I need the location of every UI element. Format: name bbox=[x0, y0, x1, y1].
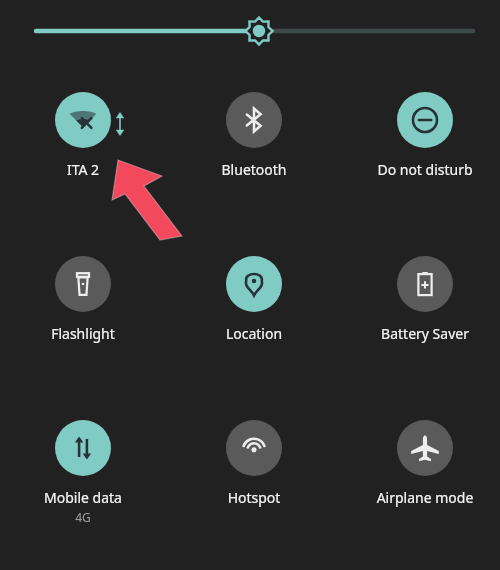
button[interactable]: ITA 2 bbox=[25, 92, 141, 179]
button[interactable]: Flashlight bbox=[25, 256, 141, 343]
staticText: Flashlight bbox=[25, 324, 141, 343]
button[interactable]: Battery Saver bbox=[367, 256, 483, 343]
staticText: Battery Saver bbox=[367, 324, 483, 343]
staticText: Mobile data bbox=[25, 488, 141, 507]
button[interactable]: Mobile data bbox=[25, 420, 141, 525]
staticText: Hotspot bbox=[196, 488, 312, 507]
staticText: Airplane mode bbox=[367, 488, 483, 507]
staticText: 4G bbox=[25, 509, 141, 525]
button[interactable]: Do not disturb bbox=[367, 92, 483, 179]
staticText: Do not disturb bbox=[367, 160, 483, 179]
button[interactable]: Airplane mode bbox=[367, 420, 483, 507]
button[interactable]: Bluetooth bbox=[196, 92, 312, 179]
staticText: ITA 2 bbox=[25, 160, 141, 179]
button[interactable]: Hotspot bbox=[196, 420, 312, 507]
staticText: Bluetooth bbox=[196, 160, 312, 179]
button[interactable]: Location bbox=[196, 256, 312, 343]
staticText: Location bbox=[196, 324, 312, 343]
button[interactable]: Brightness bbox=[20, 12, 480, 50]
